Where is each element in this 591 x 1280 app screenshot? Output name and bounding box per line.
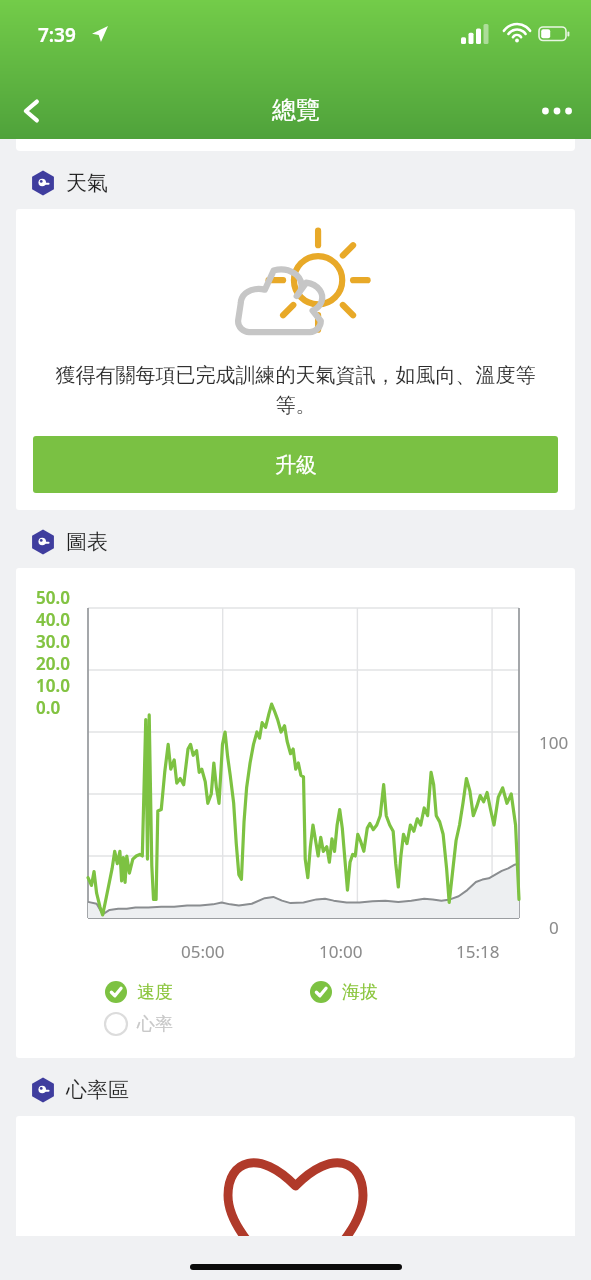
staticText: 速度 (137, 981, 173, 1004)
staticText: 7:39 (38, 22, 76, 48)
staticText: 0 (549, 916, 559, 939)
button[interactable]: More options (529, 83, 585, 139)
staticText: 50.0 (36, 586, 70, 609)
staticText: 40.0 (36, 608, 70, 631)
staticText: 10.0 (36, 674, 70, 697)
staticText: 15:18 (456, 940, 500, 963)
button[interactable]: 心率 (104, 1012, 173, 1036)
button[interactable]: 海拔 (309, 980, 378, 1004)
staticText: 升級 (275, 452, 317, 478)
staticText: 獲得有關每項已完成訓練的天氣資訊，如風向、溫度等等。 (42, 363, 549, 418)
button[interactable]: 速度 (104, 980, 309, 1004)
staticText: 100 (539, 731, 569, 754)
staticText: 海拔 (342, 981, 378, 1004)
staticText: 總覽 (272, 95, 320, 125)
staticText: 05:00 (181, 940, 225, 963)
staticText: 30.0 (36, 630, 70, 653)
button[interactable]: 升級 (33, 436, 558, 493)
button[interactable]: Back (4, 83, 60, 139)
staticText: 圖表 (66, 529, 108, 555)
staticText: 心率區 (66, 1077, 129, 1103)
staticText: 10:00 (319, 940, 363, 963)
staticText: 天氣 (66, 170, 108, 196)
staticText: 0.0 (36, 696, 61, 719)
staticText: 20.0 (36, 652, 70, 675)
staticText: 心率 (137, 1013, 173, 1036)
